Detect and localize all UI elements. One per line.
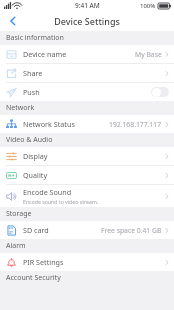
button[interactable]: SD card	[0, 221, 174, 239]
staticText: Alarm	[6, 241, 26, 251]
button[interactable]: Device name	[0, 45, 174, 64]
button[interactable]: Encode Sound	[0, 185, 174, 207]
button[interactable]: Network Status	[0, 115, 174, 133]
staticText: Device name	[23, 49, 67, 59]
staticText: SD card	[23, 225, 49, 235]
staticText: Network Status	[23, 119, 75, 129]
button[interactable]: Quality	[0, 166, 174, 185]
button[interactable]: Push	[0, 83, 174, 101]
staticText: Device Settings	[54, 15, 120, 27]
staticText: Push	[23, 87, 40, 97]
staticText: Basic information	[6, 33, 64, 43]
button[interactable]: Back	[0, 11, 26, 31]
staticText: 192.168.177.117	[109, 120, 162, 129]
staticText: Storage	[6, 209, 32, 219]
staticText: Network	[6, 103, 35, 113]
staticText: Free space 0.41 GB	[101, 226, 162, 235]
button[interactable]: PIR Settings	[0, 253, 174, 271]
staticText: Display	[23, 151, 48, 161]
staticText: Quality	[23, 170, 48, 180]
staticText: PIR Settings	[23, 257, 64, 267]
button[interactable]: Share	[0, 64, 174, 83]
staticText: Encode sound to video stream.	[23, 198, 99, 205]
staticText: Encode Sound	[23, 187, 72, 197]
staticText: 100%	[140, 2, 156, 10]
staticText: 9:41 AM	[75, 1, 100, 10]
staticText: My Base	[135, 50, 162, 59]
button[interactable]: Display	[0, 147, 174, 166]
button[interactable]: Push toggle	[151, 87, 169, 97]
staticText: Account Security	[6, 273, 61, 283]
staticText: Video & Audio	[6, 135, 53, 145]
staticText: Share	[23, 68, 43, 78]
